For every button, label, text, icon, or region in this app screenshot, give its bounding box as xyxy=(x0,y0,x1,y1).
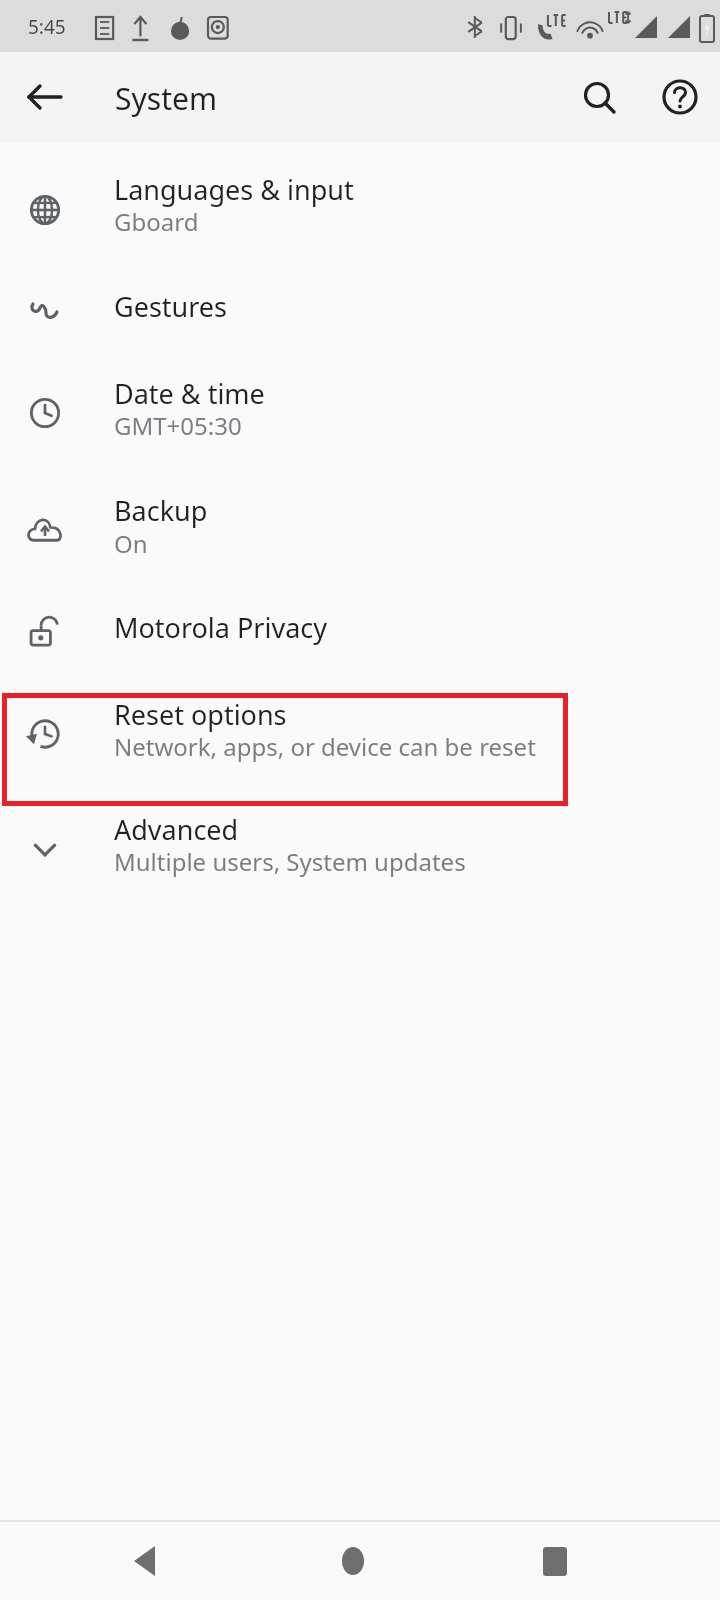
staticText: 5:45 xyxy=(28,14,66,40)
staticText: GMT+05:30 xyxy=(114,409,242,442)
staticText: Network, apps, or device can be reset xyxy=(114,730,536,763)
button[interactable] xyxy=(0,357,720,461)
staticText: Motorola Privacy xyxy=(114,609,328,646)
button[interactable]: Back xyxy=(105,1532,185,1590)
staticText: Gboard xyxy=(114,205,199,238)
staticText: Languages & input xyxy=(114,171,354,208)
button[interactable]: Help xyxy=(648,65,712,129)
button[interactable]: Back xyxy=(12,64,78,130)
button[interactable] xyxy=(0,591,720,669)
button[interactable] xyxy=(0,793,720,897)
staticText: Backup xyxy=(114,492,208,529)
button[interactable]: Search xyxy=(567,65,631,129)
staticText: Multiple users, System updates xyxy=(114,845,466,878)
button[interactable]: Recent apps xyxy=(515,1532,595,1590)
staticText: Reset options xyxy=(114,696,287,733)
staticText: Date & time xyxy=(114,375,265,412)
staticText: On xyxy=(114,527,148,560)
staticText: System xyxy=(115,78,217,119)
button[interactable]: Home xyxy=(313,1532,393,1590)
staticText: Advanced xyxy=(114,811,239,848)
button[interactable] xyxy=(0,474,720,578)
button[interactable] xyxy=(0,270,720,348)
button[interactable] xyxy=(0,153,720,257)
button[interactable] xyxy=(0,678,720,782)
staticText: Gestures xyxy=(114,288,228,325)
